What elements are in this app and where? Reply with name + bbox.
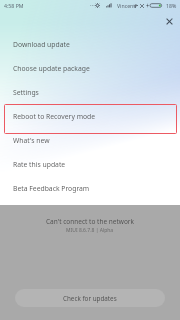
staticText: Settings <box>13 88 39 97</box>
staticText: Check for updates <box>63 294 117 303</box>
button[interactable]: Close <box>161 13 178 30</box>
staticText: 18% <box>166 2 177 9</box>
staticText: Rate this update <box>13 160 66 169</box>
button[interactable]: Choose update package <box>0 56 180 80</box>
staticText: 4:58 PM <box>4 2 24 9</box>
button[interactable]: What's new <box>0 128 180 152</box>
button[interactable]: Settings <box>0 80 180 104</box>
staticText: MIUI 8.6.7.8 | Alpha <box>66 227 114 234</box>
staticText: Vincent <box>117 2 136 9</box>
staticText: Download update <box>13 40 70 49</box>
button[interactable]: Check for updates <box>15 289 165 307</box>
staticText: Can't connect to the network <box>46 217 135 226</box>
staticText: Beta Feedback Program <box>13 184 90 193</box>
staticText: Choose update package <box>13 64 90 73</box>
staticText: ··· <box>90 1 95 9</box>
button[interactable]: Beta Feedback Program <box>0 176 180 200</box>
button[interactable]: Download update <box>0 32 180 56</box>
staticText: What's new <box>13 136 50 145</box>
staticText: Reboot to Recovery mode <box>13 112 96 121</box>
button[interactable]: Reboot to Recovery mode <box>0 104 180 128</box>
button[interactable]: Rate this update <box>0 152 180 176</box>
